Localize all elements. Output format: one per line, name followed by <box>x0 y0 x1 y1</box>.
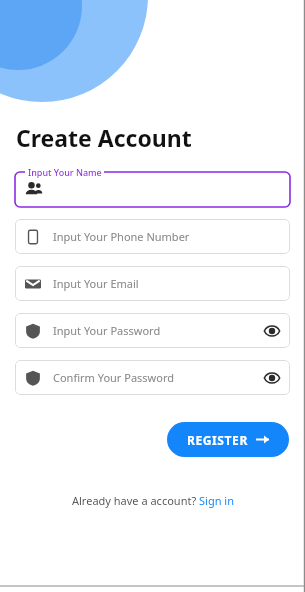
button[interactable]: Toggle password visibility <box>264 370 280 386</box>
staticText: Input Your Name <box>28 166 102 178</box>
button[interactable]: Input Your Email <box>15 266 290 301</box>
button[interactable]: Toggle password visibility <box>264 323 280 339</box>
staticText: REGISTER <box>187 432 248 448</box>
button[interactable]: Confirm Your Password <box>15 360 290 395</box>
button[interactable]: REGISTER <box>167 422 289 457</box>
staticText: Input Your Phone Number <box>53 229 280 244</box>
staticText: Create Account <box>16 122 192 153</box>
button[interactable]: Already have a account? Sign in <box>72 493 234 508</box>
button[interactable]: Input Your Name <box>15 167 290 207</box>
staticText: Confirm Your Password <box>53 370 264 385</box>
staticText: Already have a account? Sign in <box>72 493 234 508</box>
button[interactable]: Input Your Password <box>15 313 290 348</box>
staticText: Input Your Password <box>53 323 264 338</box>
button[interactable]: Input Your Phone Number <box>15 219 290 254</box>
staticText: Input Your Email <box>53 276 280 291</box>
